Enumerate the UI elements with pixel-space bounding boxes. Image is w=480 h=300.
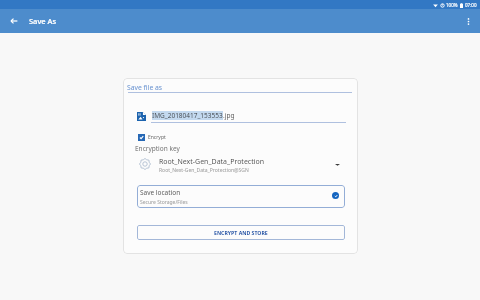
staticText: Root_Next-Gen_Data_Protection@SGN (159, 167, 249, 174)
button[interactable]: Root_Next-Gen_Data_Protection (123, 155, 358, 172)
button[interactable]: ENCRYPT AND STORE (137, 225, 345, 240)
staticText: 100% (446, 2, 458, 8)
staticText: Root_Next-Gen_Data_Protection (159, 157, 265, 167)
button[interactable]: Save location (137, 185, 345, 208)
staticText: Save As (29, 16, 57, 26)
button[interactable]: Encrypt (138, 134, 166, 141)
staticText: IMG_20180417_153553 (152, 111, 223, 120)
staticText: .jpg (223, 111, 235, 120)
staticText: Encryption key (135, 144, 180, 153)
staticText: Encrypt (148, 134, 166, 141)
button[interactable]: Back (5, 12, 23, 30)
button[interactable]: More options (459, 12, 477, 30)
staticText: 07:00 (465, 2, 477, 8)
staticText: Save location (140, 188, 181, 197)
staticText: Secure Storage/Files (140, 199, 188, 206)
staticText: ENCRYPT AND STORE (214, 229, 268, 236)
staticText: Save file as (127, 83, 163, 92)
